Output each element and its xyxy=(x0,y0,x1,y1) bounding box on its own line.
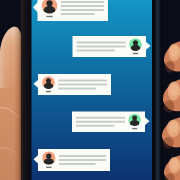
button[interactable]: Chat conversation on phone xyxy=(0,0,180,180)
